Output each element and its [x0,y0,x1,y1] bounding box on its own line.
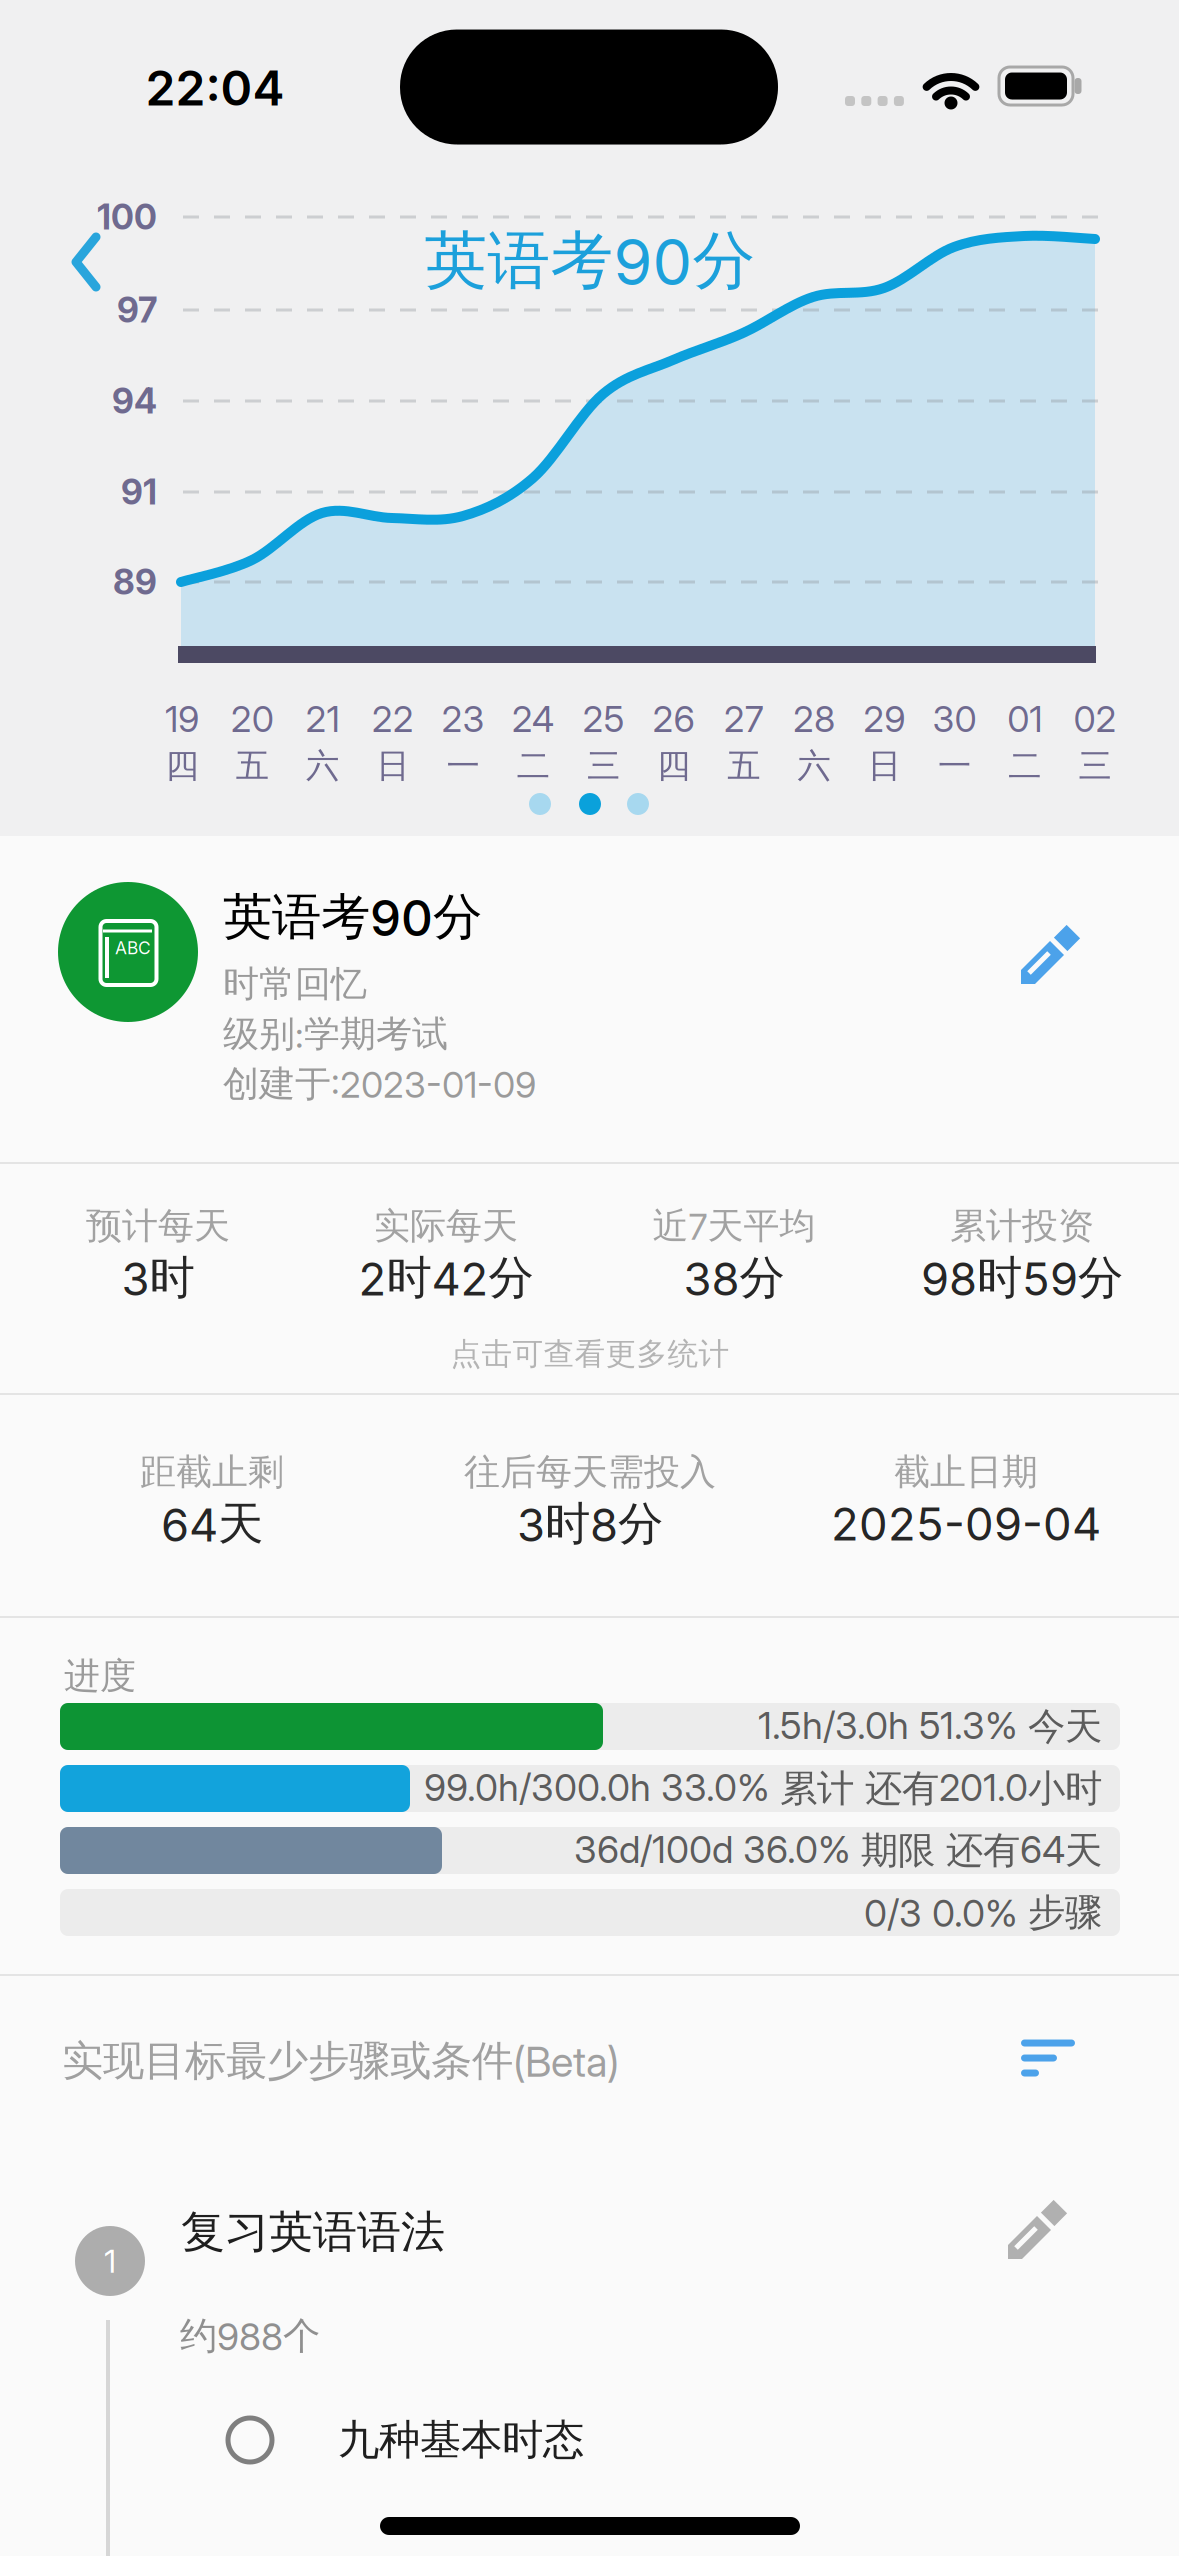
staticText: 预计每天 [86,1204,230,1248]
button[interactable]: 九种基本时态 [179,2400,879,2480]
staticText: 21 [305,698,339,740]
staticText: 29 [863,698,905,740]
staticText: 97 [117,290,157,330]
staticText: 进度 [64,1654,136,1698]
staticText: 一 [938,745,971,786]
staticText: 约988个 [180,2313,320,2359]
staticText: 3时 [121,1250,194,1306]
button[interactable] [71,232,101,292]
staticText: 四 [165,745,198,786]
staticText: 三 [1078,745,1111,786]
staticText: 38分 [683,1250,784,1306]
staticText: 89 [113,562,157,602]
staticText: 创建于:2023-01-09 [223,1062,536,1106]
staticText: 94 [112,381,157,421]
staticText: 98时59分 [921,1250,1123,1306]
button[interactable] [1016,925,1080,989]
staticText: 64天 [161,1496,263,1552]
staticText: 六 [306,745,339,786]
staticText: 26 [653,698,695,740]
staticText: 19 [165,698,199,740]
staticText: 25 [582,698,624,740]
staticText: 二 [517,745,550,786]
staticText: 36d/100d 36.0% 期限 还有64天 [574,1827,1102,1874]
staticText: 点击可查看更多统计 [450,1335,729,1373]
staticText: 23 [441,698,484,740]
staticText: 实际每天 [374,1204,518,1248]
staticText: 近7天平均 [652,1204,815,1248]
staticText: 三 [587,745,620,786]
staticText: 级别:学期考试 [223,1012,448,1056]
staticText: 英语考90分 [223,887,482,947]
staticText: 2时42分 [358,1250,533,1306]
staticText: 日 [868,745,901,786]
staticText: ABC [115,938,151,958]
button[interactable]: 预计每天 [0,1163,1179,1395]
staticText: 四 [657,745,690,786]
staticText: 一 [446,745,479,786]
staticText: 02 [1073,698,1116,740]
staticText: 六 [798,745,831,786]
staticText: 往后每天需投入 [464,1450,716,1494]
staticText: 30 [932,698,976,740]
staticText: 27 [724,698,764,740]
staticText: 九种基本时态 [338,2415,584,2465]
staticText: 20 [231,698,274,740]
staticText: 22:04 [145,60,284,116]
staticText: 24 [512,698,555,740]
staticText: 2025-09-04 [831,1497,1101,1551]
button[interactable] [1018,2036,1078,2080]
staticText: 时常回忆 [223,962,367,1006]
staticText: 91 [121,472,157,512]
staticText: 距截止剩 [140,1450,284,1494]
staticText: 01 [1007,698,1042,740]
staticText: 复习英语语法 [181,2205,445,2259]
staticText: 100 [97,197,157,237]
button[interactable] [1003,2200,1067,2264]
staticText: 0/3 0.0% 步骤 [864,1890,1102,1935]
staticText: 五 [236,745,269,786]
staticText: 22 [372,698,414,740]
staticText: 英语考90分 [424,222,755,299]
staticText: 99.0h/300.0h 33.0% 累计 还有201.0小时 [424,1765,1102,1812]
staticText: 二 [1008,745,1041,786]
staticText: 日 [376,745,409,786]
staticText: 28 [793,698,835,740]
staticText: 累计投资 [950,1204,1094,1248]
button[interactable]: 1 [35,2205,1145,2311]
staticText: 1.5h/3.0h 51.3% 今天 [758,1703,1102,1750]
staticText: 截止日期 [894,1450,1038,1494]
staticText: 实现目标最少步骤或条件(Beta) [62,2036,619,2086]
staticText: 五 [727,745,760,786]
staticText: 1 [104,2242,116,2280]
staticText: 3时8分 [517,1496,663,1552]
